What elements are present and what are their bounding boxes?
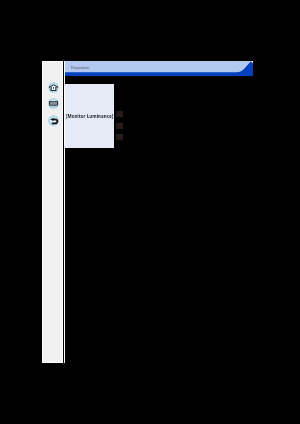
button[interactable]: Back	[48, 115, 59, 126]
button[interactable]: Display	[48, 98, 59, 109]
staticText: [Monitor Luminance]	[66, 113, 114, 119]
button[interactable]: Home	[48, 82, 59, 93]
staticText: Preparation	[71, 65, 90, 69]
button[interactable]: [Monitor Luminance]	[65, 84, 114, 148]
